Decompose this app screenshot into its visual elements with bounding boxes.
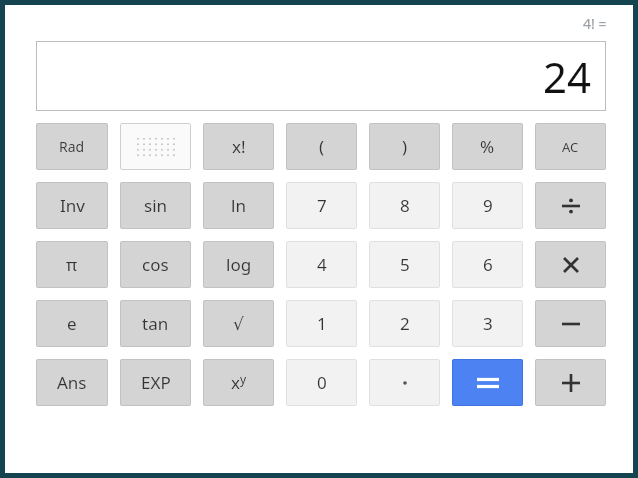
staticText: ( xyxy=(319,135,325,158)
button[interactable]: Multiply xyxy=(535,241,606,288)
staticText: 3 xyxy=(483,312,493,335)
button[interactable]: sin xyxy=(120,182,191,229)
button[interactable]: ( xyxy=(286,123,357,170)
staticText: EXP xyxy=(141,371,171,394)
button[interactable]: 4 xyxy=(286,241,357,288)
button[interactable]: Minus xyxy=(535,300,606,347)
staticText: 6 xyxy=(483,253,493,276)
button[interactable]: tan xyxy=(120,300,191,347)
button[interactable]: Inv xyxy=(36,182,108,229)
button[interactable]: Decimal point xyxy=(369,359,440,406)
button[interactable]: 7 xyxy=(286,182,357,229)
button[interactable]: 1 xyxy=(286,300,357,347)
staticText: 4! = xyxy=(583,14,607,33)
button[interactable]: e xyxy=(36,300,108,347)
staticText: 9 xyxy=(483,194,493,217)
button[interactable]: 3 xyxy=(452,300,523,347)
button[interactable]: x! xyxy=(203,123,274,170)
staticText: ln xyxy=(231,194,246,217)
button[interactable]: 5 xyxy=(369,241,440,288)
button[interactable]: AC xyxy=(535,123,606,170)
button[interactable]: 9 xyxy=(452,182,523,229)
staticText: π xyxy=(66,253,78,276)
button[interactable]: log xyxy=(203,241,274,288)
staticText: Inv xyxy=(60,194,85,217)
button[interactable]: 2 xyxy=(369,300,440,347)
staticText: 7 xyxy=(317,194,327,217)
staticText: e xyxy=(67,312,77,335)
staticText: tan xyxy=(142,312,169,335)
button[interactable]: 0 xyxy=(286,359,357,406)
button[interactable]: √ xyxy=(203,300,274,347)
button[interactable]: ) xyxy=(369,123,440,170)
button[interactable]: Equals xyxy=(452,359,523,406)
button[interactable]: 6 xyxy=(452,241,523,288)
button[interactable]: Ans xyxy=(36,359,108,406)
button[interactable]: π xyxy=(36,241,108,288)
button[interactable]: Divide xyxy=(535,182,606,229)
staticText: AC xyxy=(562,138,579,156)
staticText: √ xyxy=(233,314,244,334)
staticText: 8 xyxy=(400,194,410,217)
button[interactable]: Rad xyxy=(36,123,108,170)
staticText: sin xyxy=(144,194,168,217)
staticText: 4 xyxy=(317,253,327,276)
staticText: % xyxy=(480,135,495,158)
button[interactable]: 8 xyxy=(369,182,440,229)
staticText: ) xyxy=(402,135,408,158)
staticText: 24 xyxy=(543,48,592,105)
staticText: xy xyxy=(231,371,247,394)
button[interactable]: Keypad xyxy=(120,123,191,170)
staticText: x! xyxy=(232,135,246,158)
staticText: log xyxy=(226,253,252,276)
staticText: 5 xyxy=(400,253,410,276)
staticText: Ans xyxy=(57,371,87,394)
button[interactable]: ln xyxy=(203,182,274,229)
button[interactable]: Power xyxy=(203,359,274,406)
button[interactable]: % xyxy=(452,123,523,170)
staticText: 1 xyxy=(317,312,327,335)
staticText: Rad xyxy=(59,137,85,156)
button[interactable]: EXP xyxy=(120,359,191,406)
staticText: 0 xyxy=(317,371,327,394)
button[interactable]: cos xyxy=(120,241,191,288)
staticText: 2 xyxy=(400,312,410,335)
staticText: cos xyxy=(142,253,169,276)
button[interactable]: Plus xyxy=(535,359,606,406)
